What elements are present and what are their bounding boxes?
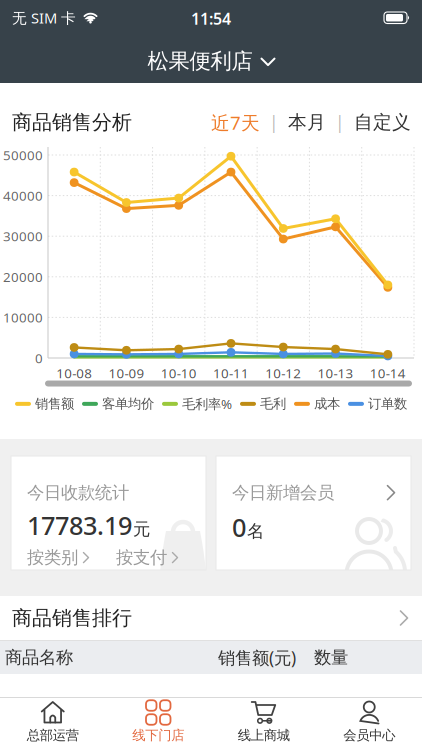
staticText: 0	[232, 510, 246, 544]
staticText: 17783.19	[27, 508, 132, 542]
button[interactable]: 按支付	[116, 547, 178, 568]
staticText: 会员中心	[343, 727, 395, 743]
staticText: 毛利率%	[182, 395, 232, 413]
staticText: 10-10	[161, 364, 197, 382]
staticText: 松果便利店	[147, 48, 252, 74]
staticText: 客单均价	[102, 396, 154, 412]
staticText: 10000	[3, 308, 43, 326]
staticText: 线上商城	[238, 727, 290, 743]
staticText: 销售额	[35, 396, 74, 412]
staticText: |	[335, 111, 345, 134]
staticText: 10-11	[213, 364, 249, 382]
button[interactable]: 总部运营	[0, 698, 105, 750]
button[interactable]: 按类别	[27, 547, 89, 568]
staticText: 50000	[3, 146, 43, 164]
staticText: 按支付	[116, 547, 167, 568]
button[interactable]: 自定义	[354, 111, 411, 134]
button[interactable]: 松果便利店	[147, 48, 274, 74]
button[interactable]: 线下门店	[105, 698, 211, 750]
staticText: 30000	[3, 227, 43, 245]
staticText: 0	[35, 349, 43, 367]
staticText: 20000	[3, 268, 43, 286]
staticText: 元	[133, 518, 150, 540]
button[interactable]: 今日新增会员	[216, 456, 411, 570]
staticText: 40000	[3, 187, 43, 204]
button[interactable]: 线上商城	[211, 698, 316, 750]
staticText: 按类别	[27, 547, 78, 568]
staticText: 销售额(元)	[218, 646, 296, 669]
staticText: 近7天	[211, 110, 260, 135]
staticText: 商品销售排行	[12, 606, 132, 630]
staticText: 11:54	[191, 8, 231, 29]
staticText: 10-14	[370, 364, 406, 382]
staticText: 订单数	[368, 396, 407, 412]
button[interactable]: 近7天	[211, 110, 260, 135]
staticText: 毛利	[260, 396, 286, 412]
staticText: 成本	[314, 396, 340, 412]
staticText: 商品销售分析	[12, 110, 132, 135]
staticText: 数量	[314, 647, 348, 668]
button[interactable]: 商品销售排行	[0, 596, 422, 640]
staticText: 10-12	[265, 364, 301, 382]
button[interactable]: 本月	[288, 111, 326, 134]
staticText: 10-08	[56, 364, 92, 382]
staticText: 10-13	[318, 364, 354, 382]
staticText: |	[269, 111, 279, 134]
staticText: 今日新增会员	[232, 482, 334, 503]
staticText: 无 SIM 卡	[12, 8, 76, 27]
staticText: 名	[247, 520, 264, 542]
staticText: 线下门店	[132, 727, 184, 743]
staticText: 商品名称	[5, 647, 73, 668]
staticText: 本月	[288, 111, 326, 134]
button[interactable]: 会员中心	[316, 698, 422, 750]
staticText: 今日收款统计	[27, 482, 129, 503]
staticText: 10-09	[108, 364, 144, 382]
staticText: 自定义	[354, 111, 411, 134]
staticText: 总部运营	[27, 727, 79, 743]
